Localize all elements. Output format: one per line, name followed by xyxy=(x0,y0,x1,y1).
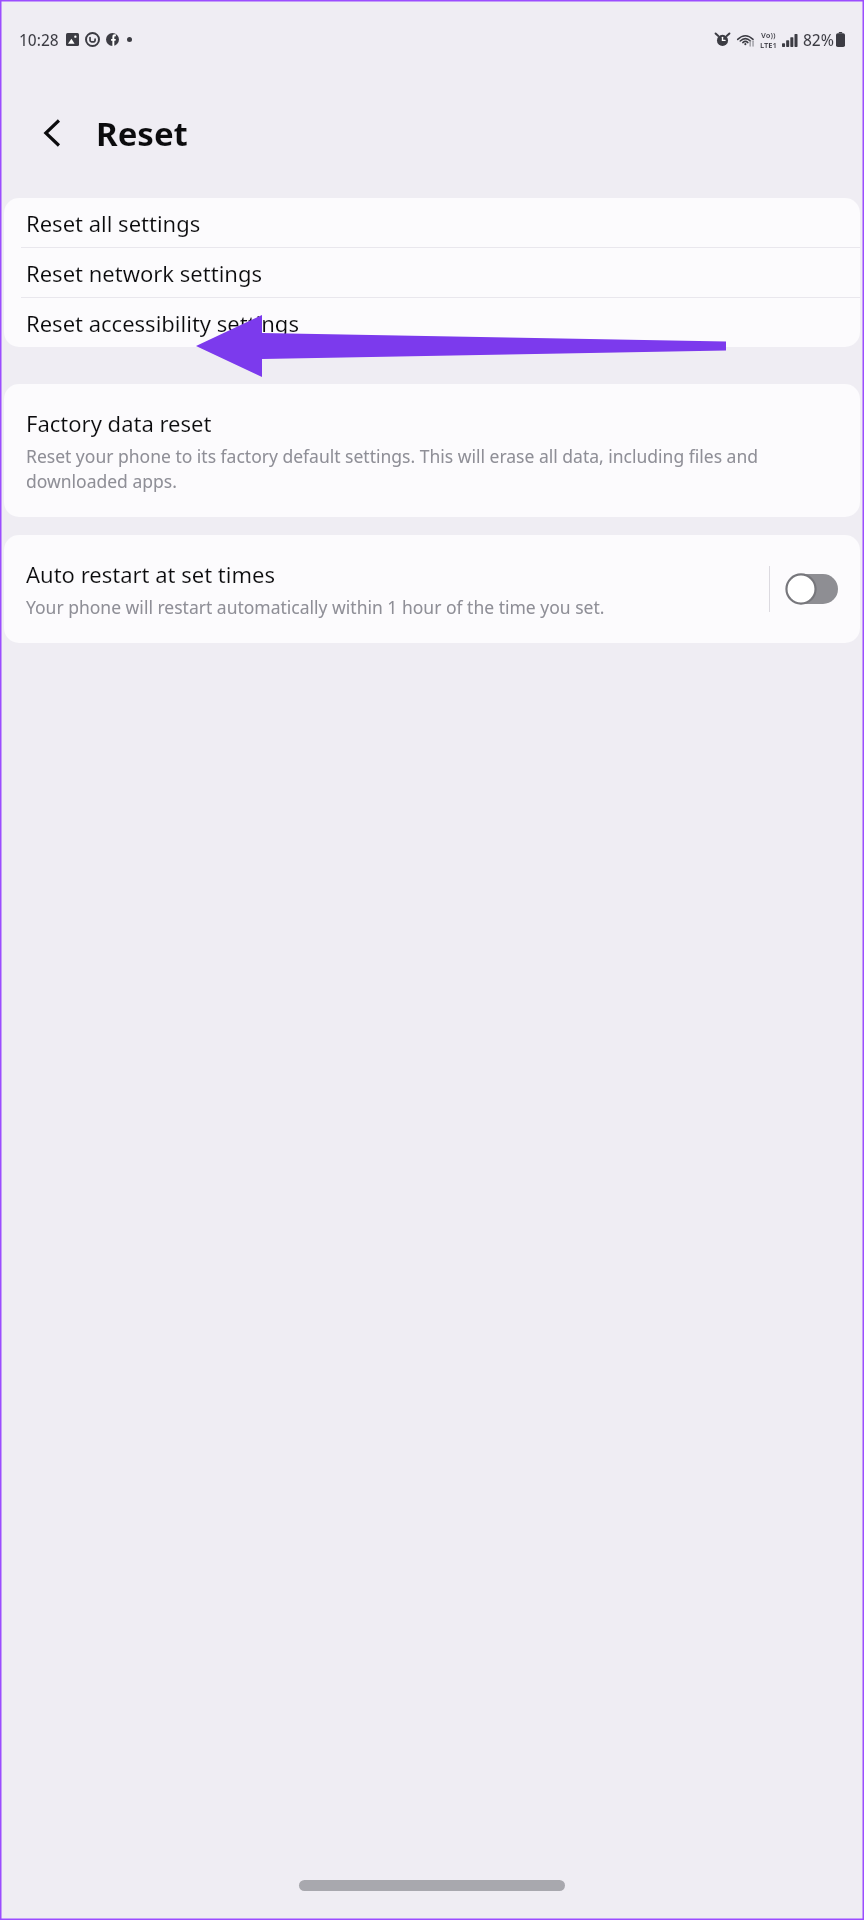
staticText: Reset accessibility settings xyxy=(26,308,299,338)
button[interactable]: Back xyxy=(26,106,80,160)
button[interactable]: Auto restart toggle, off xyxy=(786,574,838,604)
button[interactable]: Reset accessibility settings xyxy=(4,298,860,347)
staticText: Vo)) xyxy=(761,30,776,40)
staticText: 10:28 xyxy=(19,29,59,50)
staticText: Reset network settings xyxy=(26,258,262,288)
button[interactable]: Factory data reset xyxy=(4,384,860,517)
staticText: LTE1 xyxy=(760,40,777,50)
staticText: Reset your phone to its factory default … xyxy=(26,444,836,493)
staticText: Reset xyxy=(96,111,188,156)
staticText: Auto restart at set times xyxy=(26,559,275,589)
staticText: Factory data reset xyxy=(26,408,212,438)
staticText: Reset all settings xyxy=(26,208,201,238)
button[interactable]: Auto restart at set times xyxy=(4,535,860,643)
button[interactable]: Reset network settings xyxy=(4,248,860,297)
staticText: Your phone will restart automatically wi… xyxy=(26,595,605,619)
staticText: 82% xyxy=(803,29,834,50)
button[interactable]: Reset all settings xyxy=(4,198,860,247)
